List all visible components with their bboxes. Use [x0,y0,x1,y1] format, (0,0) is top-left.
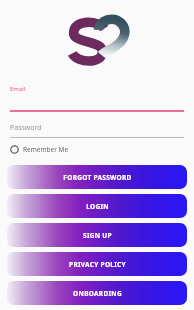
staticText: ONBOARDING [73,289,122,298]
button[interactable]: PRIVACY POLICY [7,252,187,276]
button[interactable]: ONBOARDING [7,281,187,305]
staticText: Remember Me [23,145,69,154]
button[interactable]: LOGIN [7,194,187,218]
staticText: Password [10,123,42,133]
staticText: SIGN UP [83,231,112,240]
button[interactable]: Remember Me [10,145,69,154]
staticText: LOGIN [86,202,109,211]
other: Remember Me [10,145,19,154]
button[interactable]: FORGOT PASSWORD [7,165,187,189]
button[interactable]: SIGN UP [7,223,187,247]
staticText: FORGOT PASSWORD [63,173,132,182]
staticText: Email [10,85,26,93]
staticText: PRIVACY POLICY [69,260,126,269]
